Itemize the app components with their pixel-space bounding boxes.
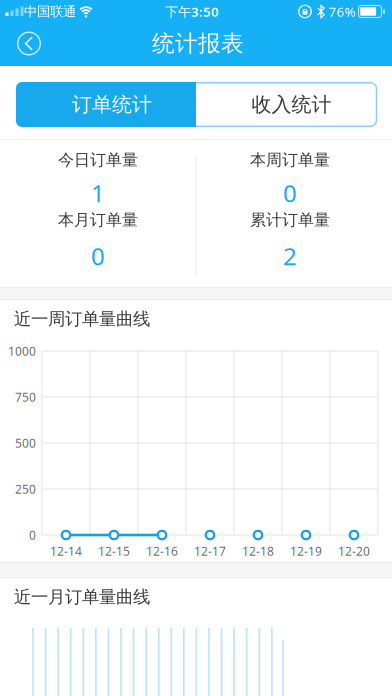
staticText: 12-17 [194,543,226,559]
staticText: 12-19 [290,543,322,559]
staticText: 12-14 [50,543,82,559]
staticText: 1 [91,177,105,209]
button[interactable]: 订单统计 [16,82,196,127]
staticText: 统计报表 [152,30,244,57]
staticText: 76% [328,3,355,20]
staticText: 12-20 [338,543,370,559]
staticText: 累计订单量 [250,210,330,230]
staticText: 750 [15,389,36,405]
staticText: 0 [29,527,36,543]
staticText: 本周订单量 [250,150,330,170]
staticText: 订单统计 [72,92,152,117]
staticText: 1000 [8,343,36,359]
staticText: 中国联通 [24,3,76,20]
staticText: 500 [15,435,36,451]
staticText: 收入统计 [251,92,331,117]
staticText: 12-15 [98,543,130,559]
staticText: 0 [283,177,297,209]
staticText: 0 [91,240,105,272]
staticText: 下午3:50 [165,3,219,20]
staticText: 近一月订单量曲线 [14,586,150,608]
staticText: 12-16 [146,543,178,559]
staticText: 今日订单量 [58,150,138,170]
staticText: 250 [15,481,36,497]
staticText: 12-18 [242,543,274,559]
staticText: 2 [283,240,297,272]
button[interactable]: Back [16,30,42,56]
button[interactable]: 收入统计 [195,82,377,127]
staticText: 本月订单量 [58,210,138,230]
staticText: 近一周订单量曲线 [14,308,150,330]
